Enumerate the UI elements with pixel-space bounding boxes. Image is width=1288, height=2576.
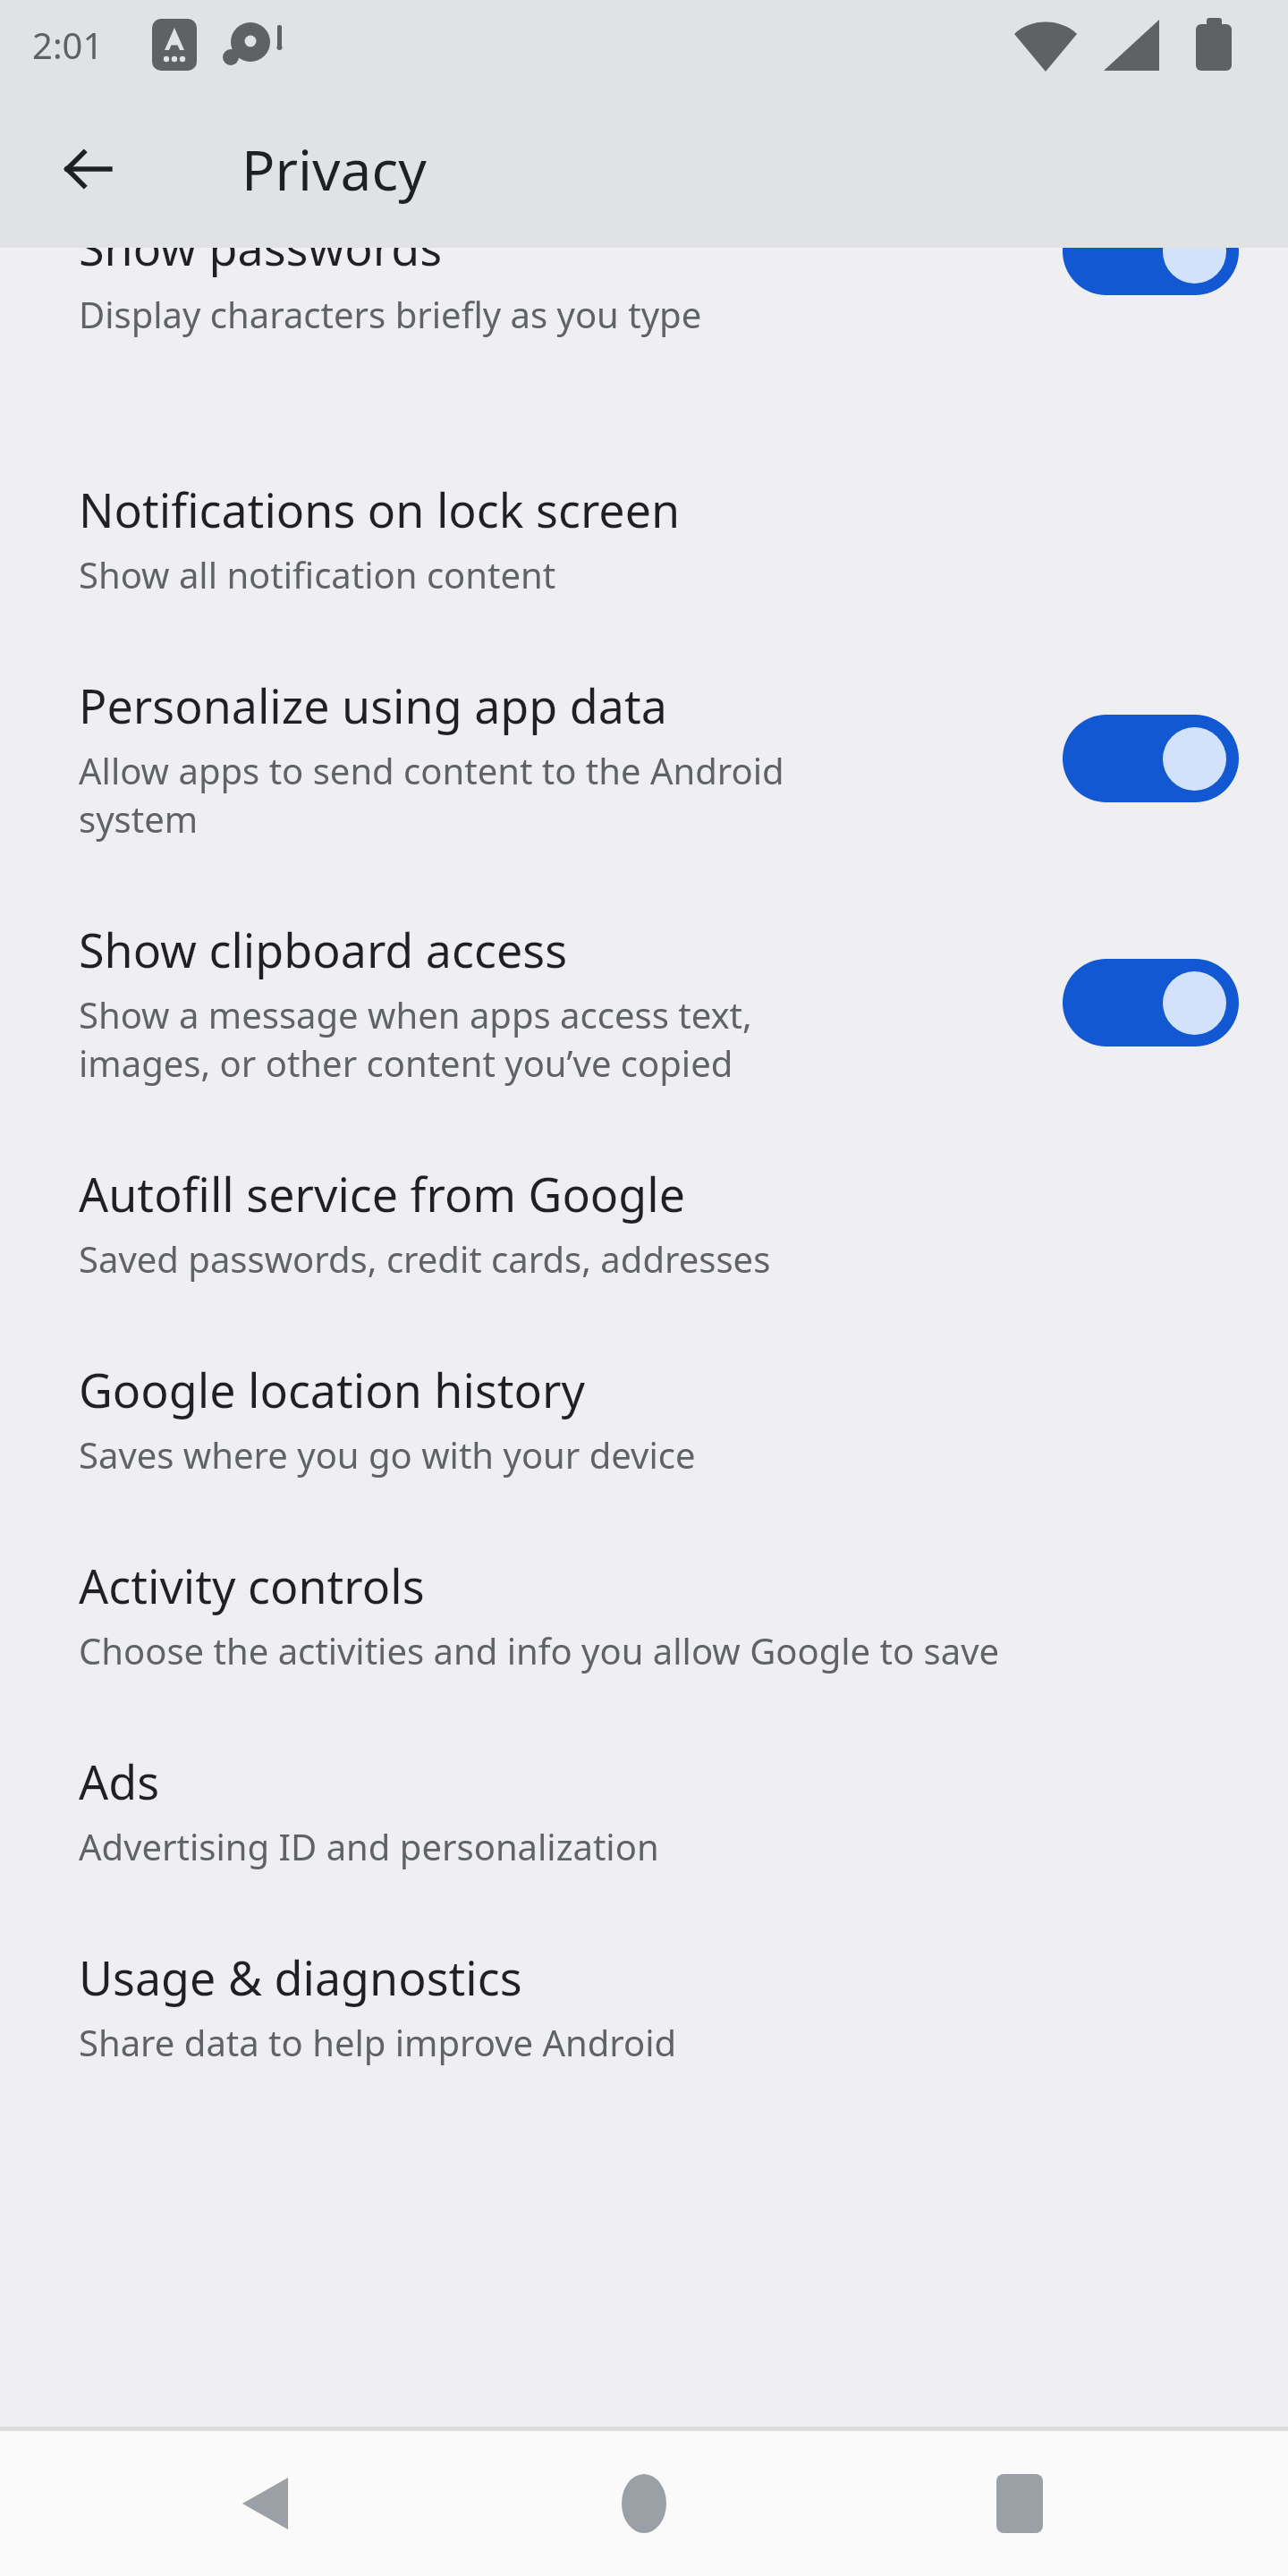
staticText: Personalize using app data <box>79 674 667 737</box>
staticText: Show all notification content <box>79 550 556 598</box>
button[interactable]: Personalize using app data <box>0 640 1288 884</box>
button[interactable]: Home <box>572 2432 716 2575</box>
staticText: Google location history <box>79 1358 586 1421</box>
staticText: system <box>79 794 199 843</box>
button[interactable]: Back <box>197 2432 340 2575</box>
staticText: Show passwords <box>79 248 443 279</box>
button[interactable]: Notifications on lock screen <box>0 378 1288 640</box>
staticText: 2:01 <box>32 21 104 69</box>
button[interactable]: Toggle <box>1063 959 1239 1046</box>
staticText: Show a message when apps access text, <box>79 990 752 1038</box>
staticText: Show clipboard access <box>79 918 568 981</box>
button[interactable]: Google location history <box>0 1324 1288 1520</box>
staticText: Ads <box>79 1750 160 1813</box>
staticText: Advertising ID and personalization <box>79 1822 659 1870</box>
button[interactable]: Toggle <box>1063 248 1239 295</box>
button[interactable]: Usage & diagnostics <box>0 1911 1288 2107</box>
staticText: Notifications on lock screen <box>79 478 681 541</box>
button[interactable]: Show passwords <box>0 248 1288 378</box>
button[interactable]: Back <box>48 129 129 209</box>
button[interactable]: Toggle <box>1063 715 1239 802</box>
staticText: Autofill service from Google <box>79 1162 686 1225</box>
staticText: Activity controls <box>79 1554 425 1617</box>
button[interactable]: Activity controls <box>0 1520 1288 1716</box>
staticText: Privacy <box>241 131 427 207</box>
staticText: Usage & diagnostics <box>79 1945 522 2009</box>
staticText: Saves where you go with your device <box>79 1430 696 1479</box>
staticText: Choose the activities and info you allow… <box>79 1626 1000 1674</box>
staticText: images, or other content you’ve copied <box>79 1038 733 1087</box>
button[interactable]: Recent apps <box>948 2432 1091 2575</box>
button[interactable]: Autofill service from Google <box>0 1128 1288 1324</box>
staticText: Share data to help improve Android <box>79 2018 677 2066</box>
button[interactable]: Ads <box>0 1716 1288 1911</box>
button[interactable]: Show clipboard access <box>0 884 1288 1128</box>
staticText: Display characters briefly as you type <box>79 290 702 338</box>
staticText: Allow apps to send content to the Androi… <box>79 746 784 794</box>
staticText: Saved passwords, credit cards, addresses <box>79 1234 771 1283</box>
